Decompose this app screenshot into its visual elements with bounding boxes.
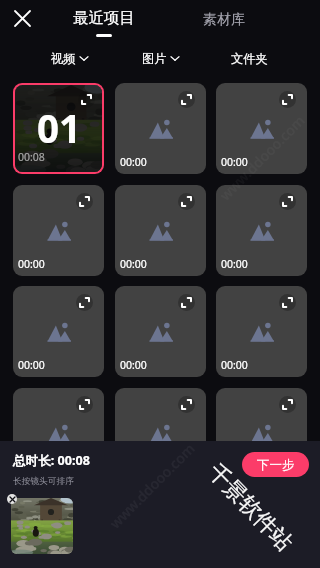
button[interactable]: Media item bbox=[115, 388, 206, 479]
button[interactable]: Selected video 01, 00:08 bbox=[15, 85, 102, 172]
button[interactable]: Media item bbox=[13, 286, 104, 377]
staticText: 00:00 bbox=[120, 155, 147, 169]
staticText: 00:00 bbox=[221, 155, 248, 169]
button[interactable]: Close bbox=[8, 4, 36, 32]
button[interactable]: Selected clip thumbnail bbox=[11, 498, 73, 554]
button[interactable]: Media item bbox=[216, 388, 307, 479]
button[interactable]: 文件夹 bbox=[231, 47, 268, 69]
button[interactable]: Preview bbox=[279, 294, 296, 311]
button[interactable]: Media item bbox=[13, 185, 104, 276]
button[interactable]: Preview bbox=[178, 91, 195, 108]
staticText: 总时长: 00:08 bbox=[13, 452, 90, 469]
staticText: 00:00 bbox=[221, 358, 248, 372]
staticText: www.ddooo.com bbox=[215, 111, 309, 204]
button[interactable]: Preview bbox=[76, 193, 93, 210]
button[interactable]: Preview bbox=[178, 294, 195, 311]
button[interactable]: Remove bbox=[7, 494, 17, 504]
staticText: 00:00 bbox=[18, 257, 45, 271]
staticText: 00:08 bbox=[18, 150, 45, 164]
button[interactable]: Media item bbox=[216, 185, 307, 276]
button[interactable]: Preview bbox=[279, 396, 296, 413]
staticText: 00:00 bbox=[120, 257, 147, 271]
staticText: 视频 bbox=[51, 51, 76, 66]
button[interactable]: Media item bbox=[115, 286, 206, 377]
staticText: 文件夹 bbox=[231, 51, 268, 66]
staticText: 图片 bbox=[142, 51, 167, 66]
button[interactable]: Media item bbox=[115, 83, 206, 174]
staticText: 00:00 bbox=[18, 358, 45, 372]
staticText: 下一步 bbox=[257, 457, 295, 473]
button[interactable]: 素材库 bbox=[189, 0, 258, 38]
button[interactable]: Media item bbox=[115, 185, 206, 276]
button[interactable]: 最近项目 bbox=[62, 0, 146, 38]
button[interactable]: Preview bbox=[78, 91, 95, 108]
staticText: 最近项目 bbox=[73, 8, 135, 28]
staticText: 00:00 bbox=[221, 460, 248, 474]
button[interactable]: Preview bbox=[178, 396, 195, 413]
staticText: 千景软件站 bbox=[202, 458, 298, 557]
staticText: 00:00 bbox=[18, 460, 45, 474]
staticText: 00:00 bbox=[221, 257, 248, 271]
button[interactable]: Preview bbox=[76, 294, 93, 311]
button[interactable]: Media item bbox=[216, 489, 307, 568]
staticText: 01 bbox=[37, 102, 82, 154]
button[interactable]: 下一步 bbox=[242, 452, 309, 477]
button[interactable]: 图片 bbox=[142, 47, 179, 69]
staticText: 长按镜头可排序 bbox=[13, 476, 74, 487]
staticText: 00:00 bbox=[120, 358, 147, 372]
staticText: www.ddooo.com bbox=[105, 439, 199, 532]
button[interactable]: Preview bbox=[279, 193, 296, 210]
staticText: 素材库 bbox=[203, 11, 245, 29]
button[interactable]: Preview bbox=[178, 193, 195, 210]
button[interactable]: Media item bbox=[216, 286, 307, 377]
button[interactable]: Preview bbox=[279, 91, 296, 108]
button[interactable]: Media item bbox=[13, 489, 104, 568]
button[interactable]: Preview bbox=[76, 396, 93, 413]
button[interactable]: 视频 bbox=[51, 47, 88, 69]
button[interactable]: Media item bbox=[13, 388, 104, 479]
button[interactable]: Media item bbox=[216, 83, 307, 174]
